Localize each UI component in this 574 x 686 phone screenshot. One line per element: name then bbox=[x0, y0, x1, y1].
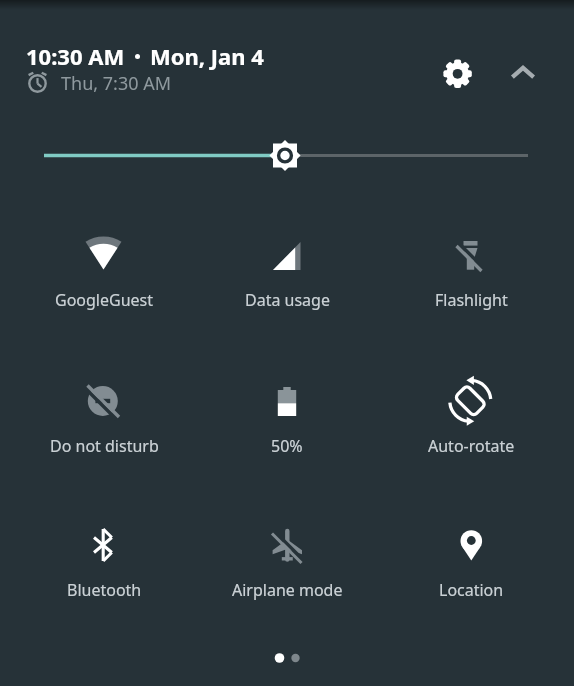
staticText: Flashlight bbox=[435, 289, 508, 311]
button[interactable]: 10:30 AM bbox=[26, 41, 264, 71]
button[interactable] bbox=[19, 366, 189, 462]
button[interactable] bbox=[19, 509, 189, 605]
staticText: Do not disturb bbox=[50, 435, 159, 457]
staticText: 50% bbox=[271, 435, 303, 457]
staticText: Location bbox=[439, 579, 504, 601]
button[interactable] bbox=[500, 49, 546, 95]
button[interactable] bbox=[386, 509, 556, 605]
staticText: 10:30 AM bbox=[26, 41, 125, 71]
button[interactable] bbox=[433, 49, 483, 99]
staticText: Mon, Jan 4 bbox=[150, 41, 264, 71]
button[interactable] bbox=[202, 366, 372, 462]
staticText: Auto-rotate bbox=[428, 435, 515, 457]
button[interactable] bbox=[386, 366, 556, 462]
button[interactable] bbox=[202, 219, 372, 315]
button[interactable] bbox=[19, 219, 189, 315]
button[interactable] bbox=[386, 219, 556, 315]
staticText: Data usage bbox=[245, 289, 330, 311]
staticText: Airplane mode bbox=[232, 579, 343, 601]
staticText: Bluetooth bbox=[67, 579, 142, 601]
button[interactable] bbox=[202, 509, 372, 605]
staticText: Thu, 7:30 AM bbox=[61, 71, 171, 95]
button[interactable] bbox=[30, 131, 544, 180]
staticText: GoogleGuest bbox=[55, 289, 154, 311]
